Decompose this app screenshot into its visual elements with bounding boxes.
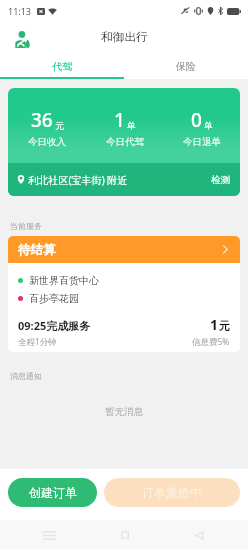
staticText: 消息通知	[10, 371, 42, 381]
staticText: 09:25完成服务	[18, 318, 91, 333]
staticText: 0	[191, 107, 202, 133]
staticText: 36	[31, 107, 53, 133]
button[interactable]: 代驾	[0, 55, 124, 79]
staticText: 今日收入	[28, 136, 66, 148]
staticText: 信息费5%	[192, 336, 230, 348]
staticText: 保险	[176, 60, 196, 73]
staticText: 待结算	[18, 242, 56, 258]
button[interactable]: 订单派抢中	[104, 478, 240, 507]
button[interactable]: 创建订单	[8, 478, 97, 507]
staticText: 创建订单	[29, 485, 77, 500]
button[interactable]: 待结算	[8, 236, 240, 263]
button[interactable]: 利北社区(宝丰街) 附近	[8, 163, 240, 196]
button[interactable]: Profile	[12, 29, 32, 49]
staticText: 单	[127, 120, 136, 131]
staticText: 暂无消息	[105, 406, 143, 418]
staticText: 今日代驾	[106, 136, 144, 148]
staticText: 当前服务	[10, 221, 42, 231]
staticText: 元	[55, 120, 64, 131]
staticText: 元	[219, 319, 230, 333]
staticText: 和御出行	[101, 30, 148, 45]
staticText: 1	[114, 107, 125, 133]
staticText: 检测	[211, 174, 230, 186]
staticText: 单	[204, 120, 213, 131]
staticText: 利北社区(宝丰街) 附近	[28, 173, 128, 187]
button[interactable]: 保险	[124, 55, 248, 79]
staticText: 百步亭花园	[29, 292, 79, 305]
staticText: 新世界百货中心	[29, 274, 99, 287]
staticText: 全程1分钟	[18, 336, 57, 348]
staticText: 1	[210, 315, 219, 334]
button[interactable]: 新世界百货中心	[8, 263, 240, 352]
staticText: 11:13	[8, 5, 32, 17]
staticText: 订单派抢中	[142, 485, 202, 500]
staticText: 代驾	[52, 60, 72, 73]
staticText: 今日退单	[183, 136, 221, 148]
